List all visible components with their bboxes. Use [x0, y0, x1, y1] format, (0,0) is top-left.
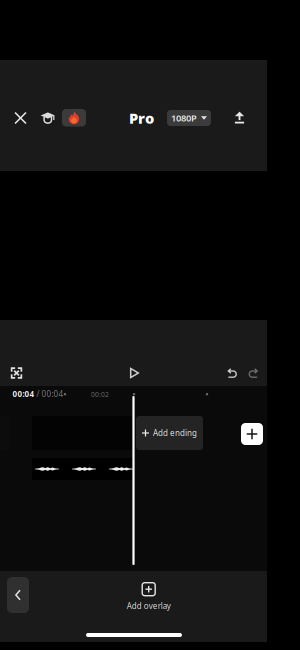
button[interactable]: Add overlay	[120, 580, 178, 614]
button[interactable]: Export	[226, 104, 252, 130]
staticText: Pro	[129, 108, 154, 128]
button[interactable]: Redo	[242, 361, 264, 385]
staticText: 1080P	[171, 112, 197, 124]
button[interactable]: Trending effects	[62, 109, 86, 126]
button[interactable]: 1080P	[167, 110, 211, 126]
staticText: Add ending	[153, 428, 197, 438]
staticText: 00:04	[12, 388, 34, 399]
button[interactable]: Tutorials	[35, 103, 61, 133]
button[interactable]: Add media	[241, 423, 263, 445]
button[interactable]: Close	[4, 103, 36, 133]
button[interactable]: Undo	[221, 361, 243, 385]
staticText: 00:02	[91, 390, 109, 399]
button[interactable]: Play	[121, 361, 147, 385]
staticText: Add overlay	[127, 601, 171, 611]
button[interactable]: Pro	[126, 108, 156, 128]
staticText: / 00:04	[34, 388, 63, 399]
button[interactable]: Add ending	[136, 416, 203, 450]
button[interactable]: Back	[7, 577, 29, 613]
button[interactable]: Full screen	[3, 361, 29, 385]
